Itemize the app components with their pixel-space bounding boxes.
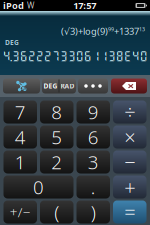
staticText: 0 <box>33 175 44 199</box>
staticText: 13 <box>139 26 145 33</box>
staticText: 4.36222733061138E40 <box>2 49 147 62</box>
button[interactable]: Delete <box>111 78 147 93</box>
staticText: +/− <box>10 203 31 221</box>
staticText: + <box>124 174 135 200</box>
button[interactable]: + <box>113 175 146 198</box>
staticText: W <box>27 0 34 11</box>
staticText: 9 <box>88 100 99 124</box>
staticText: 1 <box>15 150 26 174</box>
button[interactable]: More <box>78 78 108 93</box>
staticText: 3 <box>88 150 99 174</box>
staticText: × <box>124 124 135 150</box>
button[interactable]: Scientific functions <box>3 78 40 93</box>
staticText: 5 <box>51 125 62 149</box>
button[interactable]: 1 <box>3 150 37 173</box>
button[interactable]: 7 <box>3 100 37 123</box>
staticText: iPod <box>3 0 24 12</box>
staticText: ÷ <box>124 99 135 125</box>
staticText: RAD <box>60 82 74 90</box>
staticText: . <box>91 175 96 199</box>
staticText: 7 <box>15 100 26 124</box>
staticText: − <box>124 149 135 175</box>
button[interactable]: 4 <box>3 125 37 148</box>
button[interactable]: ( <box>40 200 73 223</box>
button[interactable]: ) <box>76 200 110 223</box>
button[interactable]: ÷ <box>113 100 146 123</box>
button[interactable]: DEG <box>42 78 76 93</box>
button[interactable]: . <box>76 175 110 198</box>
button[interactable]: 3 <box>76 150 110 173</box>
button[interactable]: = <box>113 200 146 223</box>
staticText: ) <box>91 200 96 224</box>
button[interactable]: 6 <box>76 125 110 148</box>
staticText: 17:57 <box>73 0 96 12</box>
staticText: 8 <box>51 100 62 124</box>
staticText: 2 <box>51 150 62 174</box>
button[interactable]: 5 <box>40 125 73 148</box>
staticText: +1337 <box>114 25 139 37</box>
staticText: (√3)+log(9) <box>61 25 108 37</box>
button[interactable]: 8 <box>40 100 73 123</box>
staticText: 99 <box>108 26 114 33</box>
staticText: 6 <box>88 125 99 149</box>
staticText: = <box>124 199 135 225</box>
button[interactable]: − <box>113 150 146 173</box>
button[interactable]: +/− <box>3 200 37 223</box>
button[interactable]: 9 <box>76 100 110 123</box>
staticText: ( <box>54 200 59 224</box>
staticText: DEG <box>43 82 57 90</box>
staticText: 4 <box>15 125 26 149</box>
button[interactable]: 0 <box>3 175 73 198</box>
button[interactable]: 2 <box>40 150 73 173</box>
staticText: DEG <box>5 38 19 47</box>
button[interactable]: × <box>113 125 146 148</box>
